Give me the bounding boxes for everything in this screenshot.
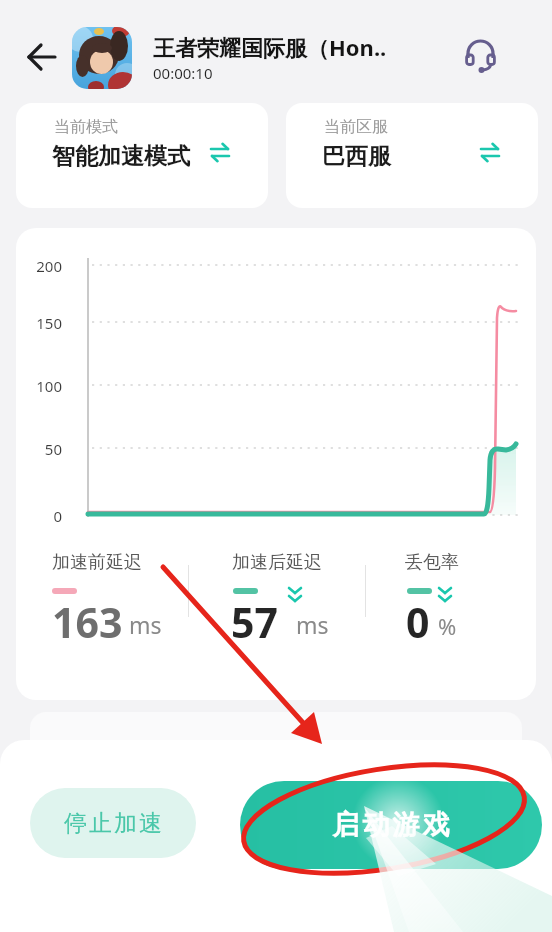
- button[interactable]: [20, 36, 64, 80]
- staticText: 加速后延迟: [232, 551, 322, 574]
- staticText: 巴西服: [322, 142, 391, 171]
- staticText: 启动游戏: [331, 808, 451, 842]
- staticText: %: [438, 611, 457, 641]
- staticText: 王者荣耀国际服（Hon..: [153, 32, 387, 62]
- staticText: ms: [296, 609, 329, 640]
- staticText: 50: [16, 439, 62, 459]
- button[interactable]: 停止加速: [30, 788, 196, 858]
- staticText: 0: [406, 594, 430, 650]
- staticText: 加速前延迟: [52, 551, 142, 574]
- staticText: 163: [52, 594, 123, 650]
- button[interactable]: 当前区服: [286, 103, 538, 208]
- staticText: 停止加速: [63, 809, 163, 838]
- staticText: 150: [16, 313, 62, 333]
- staticText: 00:00:10: [153, 63, 213, 83]
- staticText: 智能加速模式: [52, 142, 190, 171]
- staticText: ms: [129, 609, 162, 640]
- staticText: 200: [16, 256, 62, 276]
- button[interactable]: 启动游戏: [240, 781, 542, 869]
- staticText: 丢包率: [405, 551, 459, 574]
- staticText: 当前模式: [54, 117, 118, 137]
- staticText: 当前区服: [324, 117, 388, 137]
- button[interactable]: [464, 37, 500, 73]
- staticText: 100: [16, 376, 62, 396]
- staticText: 0: [16, 506, 62, 526]
- staticText: 57: [231, 594, 278, 650]
- button[interactable]: 当前模式: [16, 103, 268, 208]
